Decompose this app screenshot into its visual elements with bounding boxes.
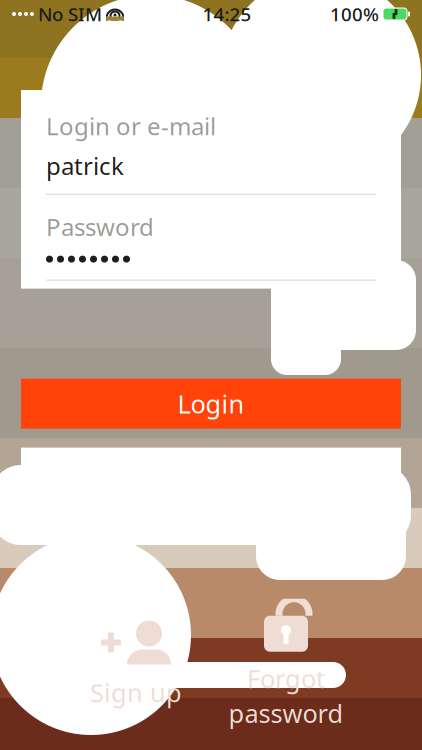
staticText: Forgot: [247, 662, 325, 695]
button[interactable]: Forgot password: [211, 593, 361, 736]
staticText: 100%: [330, 2, 379, 26]
staticText: No SIM: [38, 2, 102, 26]
staticText: Login or e-mail: [46, 110, 216, 142]
staticText: patrick: [46, 150, 124, 182]
staticText: Login: [177, 387, 244, 420]
staticText: Password: [46, 211, 154, 243]
button[interactable]: Login: [21, 379, 401, 429]
staticText: Sign up: [90, 675, 182, 709]
button[interactable]: Sign up: [61, 613, 211, 715]
staticText: password: [228, 696, 343, 730]
staticText: 14:25: [202, 2, 251, 26]
